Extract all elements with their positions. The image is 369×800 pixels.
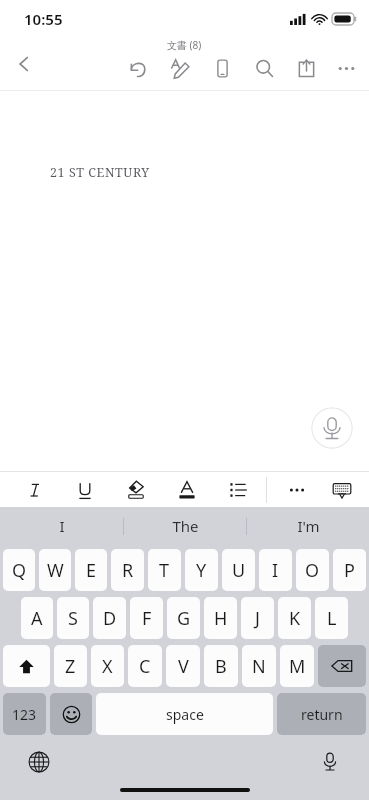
staticText: P xyxy=(344,558,355,583)
staticText: J xyxy=(255,606,260,631)
button[interactable]: Emoji xyxy=(50,693,92,735)
button[interactable]: R xyxy=(111,549,144,591)
button[interactable]: 123 xyxy=(3,693,46,735)
button[interactable]: Italic xyxy=(20,475,50,505)
button[interactable]: return xyxy=(277,693,366,735)
staticText: Y xyxy=(196,558,207,583)
staticText: C xyxy=(139,654,151,679)
button[interactable]: Markup xyxy=(165,53,195,83)
button[interactable]: Device xyxy=(207,53,237,83)
staticText: return xyxy=(301,705,343,724)
button[interactable]: space xyxy=(96,693,273,735)
button[interactable]: W xyxy=(39,549,71,591)
button[interactable]: U xyxy=(222,549,255,591)
button[interactable]: Q xyxy=(3,549,35,591)
staticText: D xyxy=(103,606,117,631)
button[interactable]: L xyxy=(315,597,348,639)
button[interactable]: The xyxy=(124,507,246,545)
button[interactable]: Text color xyxy=(172,475,202,505)
button[interactable]: M xyxy=(280,645,314,687)
staticText: Z xyxy=(65,654,76,679)
staticText: E xyxy=(86,558,97,583)
button[interactable]: B xyxy=(204,645,238,687)
button[interactable]: Y xyxy=(185,549,218,591)
button[interactable]: E xyxy=(75,549,107,591)
button[interactable]: Shift xyxy=(3,645,50,687)
button[interactable]: I xyxy=(0,507,123,545)
staticText: V xyxy=(178,654,189,679)
button[interactable]: V xyxy=(166,645,200,687)
staticText: R xyxy=(122,558,134,583)
button[interactable]: Voice input xyxy=(313,745,347,779)
button[interactable]: Change keyboard language xyxy=(22,745,56,779)
button[interactable]: Hide keyboard xyxy=(327,475,357,505)
button[interactable]: Share xyxy=(291,53,321,83)
button[interactable]: O xyxy=(296,549,329,591)
button[interactable]: Highlight xyxy=(121,475,151,505)
staticText: 21 ST CENTURY xyxy=(50,164,150,181)
staticText: A xyxy=(31,606,43,631)
button[interactable]: H xyxy=(204,597,237,639)
button[interactable]: K xyxy=(278,597,311,639)
staticText: 文書 (8) xyxy=(167,38,202,52)
staticText: L xyxy=(327,606,337,631)
button[interactable]: A xyxy=(21,597,53,639)
button[interactable]: Underline xyxy=(70,475,100,505)
button[interactable]: T xyxy=(148,549,181,591)
button[interactable]: N xyxy=(242,645,276,687)
staticText: I xyxy=(272,558,279,583)
button[interactable]: F xyxy=(130,597,163,639)
staticText: K xyxy=(289,606,301,631)
button[interactable]: More options xyxy=(331,53,361,83)
button[interactable]: Backspace xyxy=(318,645,366,687)
button[interactable]: List xyxy=(223,475,253,505)
staticText: Q xyxy=(12,558,27,583)
staticText: 123 xyxy=(12,705,37,724)
button[interactable]: Undo xyxy=(123,53,153,83)
staticText: T xyxy=(159,558,170,583)
staticText: N xyxy=(252,654,266,679)
button[interactable]: I xyxy=(259,549,292,591)
staticText: S xyxy=(68,606,78,631)
button[interactable]: Search xyxy=(249,53,279,83)
staticText: W xyxy=(47,558,64,583)
staticText: 10:55 xyxy=(24,9,63,29)
button[interactable]: Dictate xyxy=(311,407,353,449)
button[interactable]: C xyxy=(128,645,162,687)
button[interactable]: P xyxy=(333,549,366,591)
staticText: M xyxy=(289,654,306,679)
button[interactable]: S xyxy=(57,597,89,639)
button[interactable]: J xyxy=(241,597,274,639)
button[interactable]: I'm xyxy=(247,507,369,545)
button[interactable]: G xyxy=(167,597,200,639)
staticText: H xyxy=(214,606,228,631)
button[interactable]: X xyxy=(91,645,124,687)
staticText: I'm xyxy=(297,516,320,536)
staticText: I xyxy=(59,516,65,536)
staticText: The xyxy=(172,516,199,536)
button[interactable]: Z xyxy=(54,645,87,687)
staticText: U xyxy=(232,558,246,583)
button[interactable]: Back xyxy=(6,46,42,82)
staticText: O xyxy=(305,558,320,583)
button[interactable]: D xyxy=(93,597,126,639)
staticText: F xyxy=(142,606,152,631)
staticText: space xyxy=(166,705,204,724)
staticText: G xyxy=(177,606,191,631)
staticText: X xyxy=(102,654,113,679)
staticText: B xyxy=(215,654,227,679)
button[interactable]: More formatting xyxy=(282,475,312,505)
